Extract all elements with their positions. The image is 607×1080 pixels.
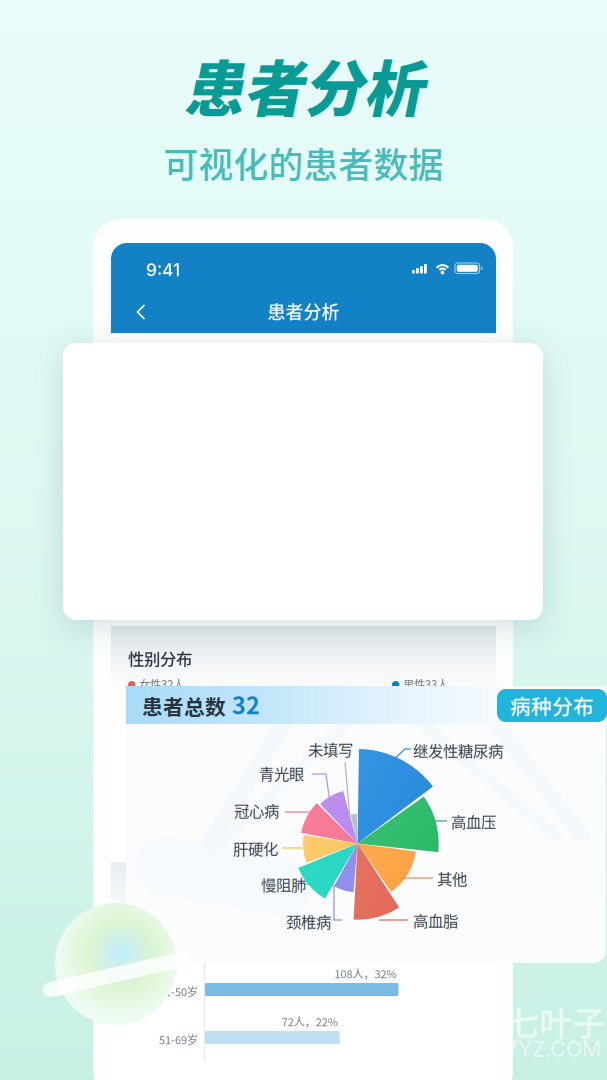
- staticText: 继发性糖尿病: [413, 739, 503, 761]
- staticText: 患者分析: [267, 298, 339, 324]
- staticText: 青光眼: [259, 762, 304, 784]
- staticText: 女性32人，: [139, 676, 195, 692]
- staticText: 9:41: [146, 259, 180, 280]
- staticText: 病种分布: [510, 690, 594, 720]
- staticText: 7YZ.COM: [506, 1036, 601, 1062]
- staticText: 51-69岁: [159, 1032, 198, 1047]
- staticText: 冠心病: [234, 799, 279, 821]
- staticText: 七叶子: [506, 997, 605, 1045]
- staticText: 未填写31人，: [403, 808, 470, 824]
- staticText: 18-30岁: [159, 936, 198, 951]
- staticText: 男性33人，: [403, 676, 459, 692]
- staticText: 32: [232, 687, 260, 721]
- staticText: 高血脂: [413, 909, 458, 931]
- staticText: 可视化的患者数据: [163, 138, 443, 188]
- staticText: 患者分析: [183, 42, 423, 128]
- staticText: 其他: [437, 867, 467, 889]
- staticText: 颈椎病: [286, 910, 331, 932]
- staticText: 患者总数: [142, 691, 226, 721]
- staticText: 31-50岁: [159, 984, 198, 999]
- staticText: 肝硬化: [233, 837, 278, 859]
- staticText: 性别分布: [128, 646, 192, 670]
- staticText: 32%: [139, 694, 162, 710]
- staticText: 慢阻肺: [261, 873, 306, 895]
- staticText: 高血压: [451, 810, 496, 832]
- button[interactable]: 病种分布: [497, 689, 607, 722]
- staticText: 108人，32%: [335, 966, 397, 981]
- staticText: 72人，22%: [282, 1014, 338, 1029]
- staticText: 未填写: [308, 738, 353, 760]
- button[interactable]: 返回: [119, 290, 163, 334]
